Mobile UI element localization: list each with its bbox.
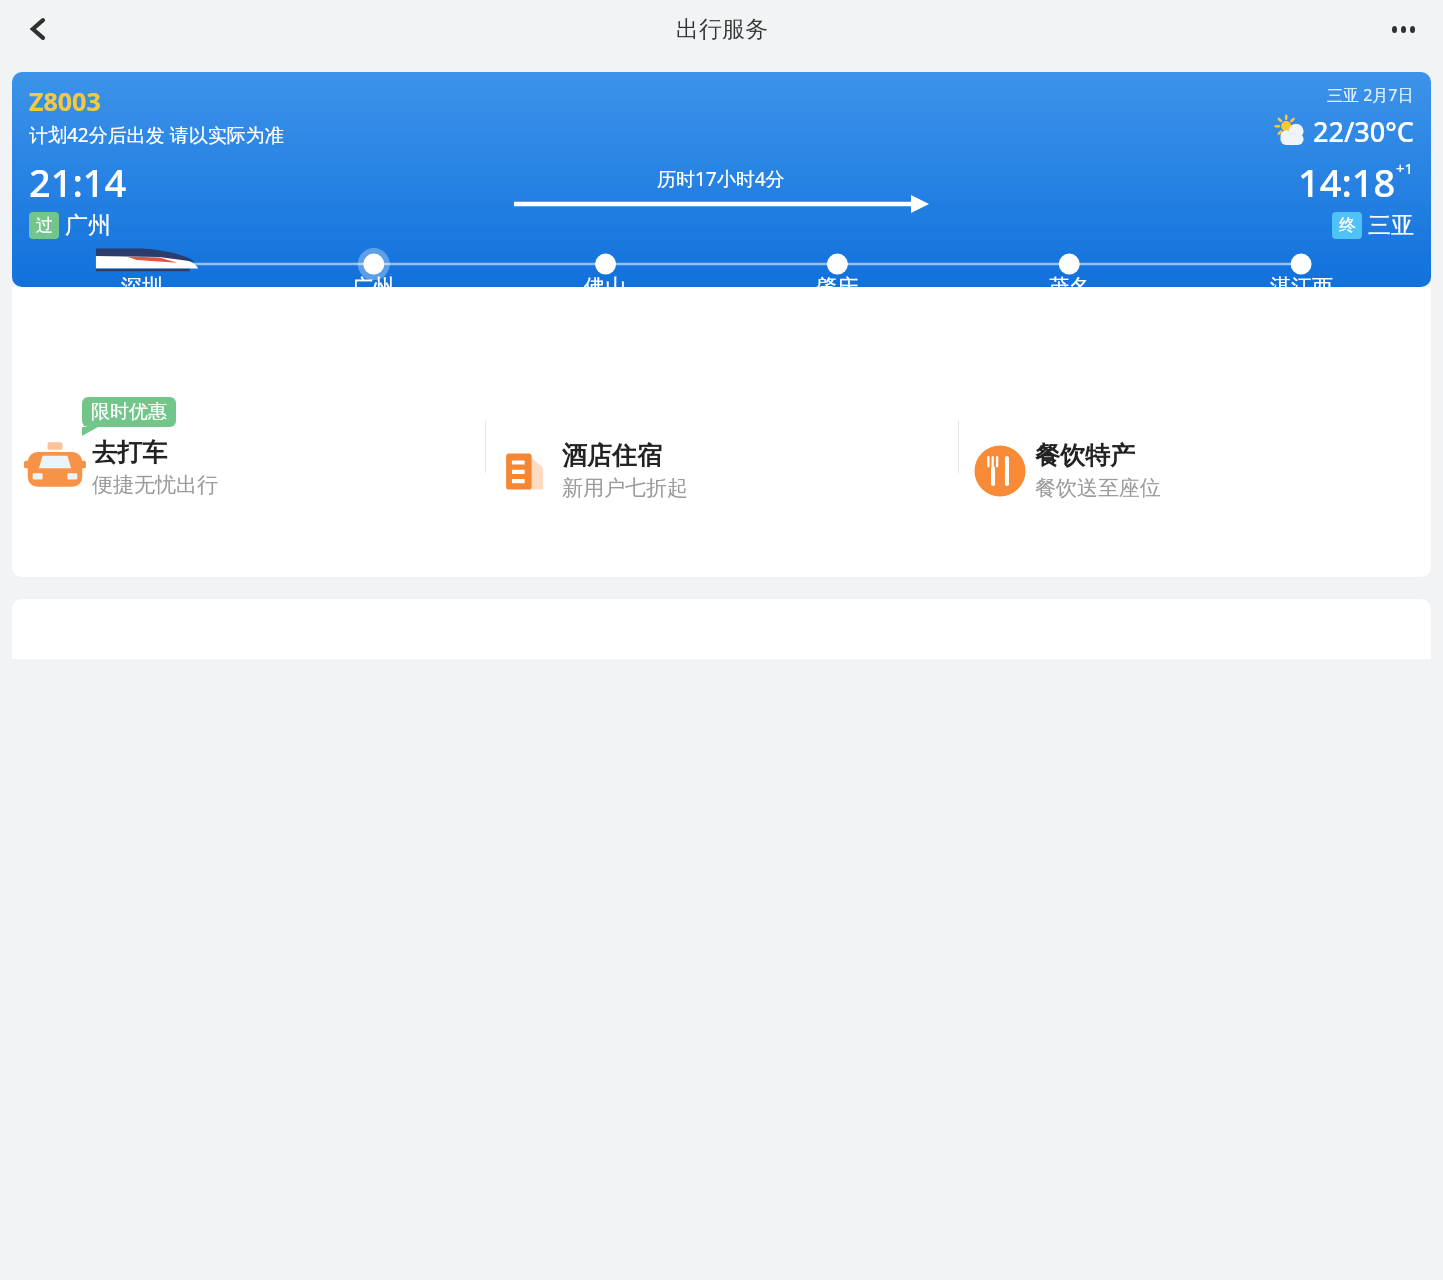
staticText: 肇庆: [816, 274, 858, 287]
staticText: 酒店住宿: [562, 440, 662, 471]
staticText: 过: [36, 215, 53, 236]
staticText: 三亚: [1368, 211, 1414, 240]
staticText: 茂名: [1048, 274, 1090, 287]
staticText: 计划42分后出发 请以实际为准: [29, 122, 284, 148]
staticText: 21:14: [29, 156, 127, 208]
staticText: 佛山: [584, 274, 626, 287]
button[interactable]: 限时优惠: [12, 317, 485, 577]
staticText: 三亚 2月7日: [1327, 84, 1414, 106]
staticText: +1: [1396, 158, 1414, 178]
staticText: 出行服务: [676, 15, 768, 44]
staticText: 深圳: [121, 274, 163, 287]
staticText: Z8003: [29, 84, 101, 118]
staticText: 广州: [65, 211, 111, 240]
staticText: 终: [1339, 215, 1356, 236]
button[interactable]: Back: [18, 8, 60, 50]
staticText: 便捷无忧出行: [92, 472, 218, 498]
staticText: 湛江西: [1270, 274, 1333, 287]
staticText: 限时优惠: [91, 400, 167, 424]
staticText: 去打车: [92, 437, 167, 468]
staticText: 新用户七折起: [562, 475, 688, 501]
button[interactable]: Z8003: [12, 72, 1431, 287]
staticText: 餐饮送至座位: [1035, 475, 1161, 501]
staticText: 广州: [352, 274, 394, 287]
staticText: 22/30°C: [1313, 113, 1414, 150]
button[interactable]: 酒店住宿: [486, 317, 958, 577]
staticText: 历时17小时4分: [657, 166, 785, 192]
staticText: 餐饮特产: [1035, 440, 1135, 471]
staticText: 14:18: [1298, 156, 1396, 208]
button[interactable]: 餐饮特产: [959, 317, 1431, 577]
button[interactable]: More options: [1381, 7, 1425, 51]
